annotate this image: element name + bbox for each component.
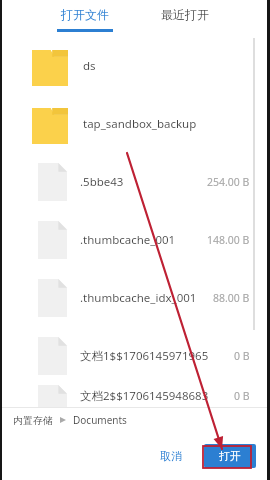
staticText: 文档2$$1706145948683 — [80, 388, 234, 404]
staticText: 88.00 B — [213, 291, 250, 305]
staticText: .5bbe43 — [80, 174, 207, 190]
staticText: 254.00 B — [207, 175, 250, 189]
staticText: 0 B — [234, 349, 250, 363]
other: Annotation — [0, 0, 270, 480]
button[interactable]: .thumbcache_idx_001 — [0, 269, 270, 327]
staticText: 内置存储 — [13, 414, 53, 427]
staticText: 文档1$$1706145971965 — [80, 348, 234, 364]
staticText: 148.00 B — [207, 233, 250, 247]
staticText: tap_sandbox_backup — [83, 116, 197, 132]
staticText: .thumbcache_001 — [80, 232, 207, 248]
button[interactable]: 打开 — [204, 444, 256, 468]
button[interactable]: 取消 — [150, 444, 192, 468]
staticText: 取消 — [160, 449, 182, 463]
button[interactable]: 最近打开 — [146, 0, 224, 34]
button[interactable]: 文档1$$1706145971965 — [0, 327, 270, 385]
staticText: ds — [83, 58, 96, 74]
staticText: Documents — [73, 413, 127, 427]
button[interactable]: 打开文件 — [46, 0, 124, 34]
staticText: 最近打开 — [161, 7, 209, 22]
button[interactable]: ds — [0, 37, 270, 95]
staticText: 打开文件 — [61, 7, 109, 22]
button[interactable]: tap_sandbox_backup — [0, 95, 270, 153]
button[interactable]: .thumbcache_001 — [0, 211, 270, 269]
staticText: 0 B — [234, 389, 250, 403]
button[interactable]: 文档2$$1706145948683 — [0, 385, 270, 407]
staticText: .thumbcache_idx_001 — [80, 290, 213, 306]
staticText: 打开 — [219, 449, 241, 463]
button[interactable]: 内置存储 — [0, 408, 270, 432]
button[interactable]: .5bbe43 — [0, 153, 270, 211]
